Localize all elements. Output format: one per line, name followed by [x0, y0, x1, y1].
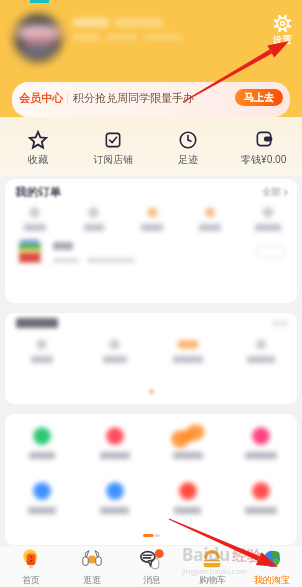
button[interactable]: 足迹 [150, 117, 226, 176]
button[interactable]: 消息 [122, 546, 182, 587]
button[interactable] [151, 337, 224, 363]
button[interactable]: 零钱¥0.00 [226, 117, 302, 176]
button[interactable]: 我的淘宝 [242, 546, 302, 587]
staticText: 设置 [273, 34, 292, 46]
staticText: jingyan.baidu.com [182, 566, 247, 576]
button[interactable] [5, 425, 78, 459]
staticText: 积分抢兑周同学限量手办 [73, 91, 194, 105]
staticText: 零钱¥0.00 [241, 152, 287, 166]
button[interactable] [239, 205, 297, 231]
button[interactable] [224, 425, 297, 459]
staticText: 会员中心 [19, 91, 63, 105]
button[interactable]: 收藏 [0, 117, 75, 176]
button[interactable] [181, 205, 239, 231]
button[interactable] [151, 425, 224, 459]
staticText: 我的订单 [15, 185, 61, 199]
button[interactable] [5, 337, 78, 363]
staticText: Baidu [182, 543, 231, 566]
staticText: 马上去 [244, 91, 274, 104]
staticText: 经验 [232, 547, 262, 566]
staticText: 全部 [262, 186, 281, 198]
button[interactable] [123, 205, 181, 231]
staticText: 订阅店铺 [93, 153, 133, 166]
staticText: 收藏 [28, 153, 48, 166]
button[interactable]: 设置 [266, 14, 298, 46]
button[interactable] [64, 205, 123, 231]
staticText: 我的淘宝 [254, 574, 290, 585]
button[interactable]: 全部 [262, 186, 288, 198]
button[interactable] [224, 480, 297, 514]
button[interactable] [224, 337, 297, 363]
button[interactable]: 购物车 [182, 546, 242, 587]
button[interactable] [78, 337, 151, 363]
button[interactable] [5, 480, 78, 514]
staticText: 逛逛 [83, 574, 101, 585]
button[interactable]: 逛逛 [61, 546, 122, 587]
button[interactable] [78, 480, 151, 514]
button[interactable] [78, 425, 151, 459]
button[interactable]: 会员中心 [12, 82, 290, 117]
button[interactable] [5, 205, 64, 231]
staticText: 足迹 [178, 153, 198, 166]
button[interactable]: 首页 [0, 546, 61, 587]
button[interactable] [151, 480, 224, 514]
staticText: 首页 [22, 574, 40, 585]
button[interactable]: 订阅店铺 [75, 117, 150, 176]
staticText: 购物车 [199, 574, 226, 585]
staticText: 消息 [143, 574, 161, 585]
